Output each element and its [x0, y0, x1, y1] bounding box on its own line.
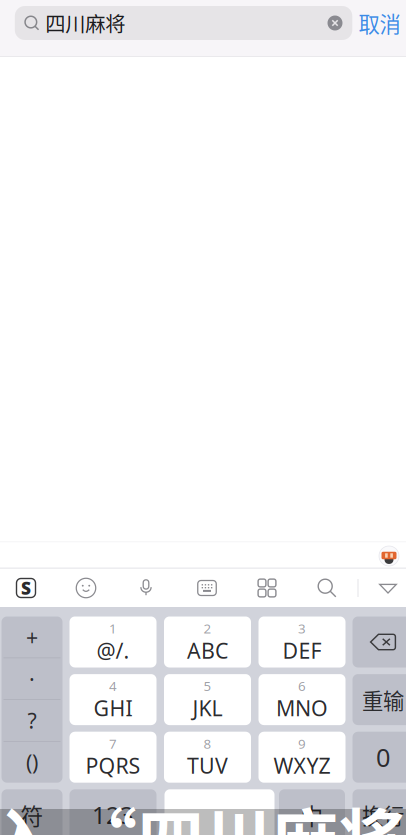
button[interactable]: · — [1, 658, 62, 699]
staticText: () — [26, 748, 38, 776]
staticText: TUV — [187, 751, 228, 780]
button[interactable]: ? — [1, 700, 62, 741]
staticText: 9 — [298, 735, 306, 752]
button[interactable]: 9 — [258, 732, 345, 783]
button[interactable]: 7 — [69, 732, 156, 783]
button[interactable]: 0 — [352, 732, 406, 783]
staticText: WXYZ — [273, 751, 330, 780]
button[interactable]: 8 — [164, 732, 251, 783]
button[interactable]: 3 — [258, 616, 345, 667]
staticText: ABC — [187, 636, 228, 664]
staticText: 5 — [203, 677, 211, 695]
button[interactable]: Sogou input — [4, 568, 48, 607]
button[interactable]: 符 — [1, 789, 62, 835]
staticText: 1 — [109, 619, 117, 637]
staticText: S — [21, 576, 31, 599]
button[interactable]: 123 — [69, 789, 156, 835]
staticText: 2 — [203, 619, 211, 637]
button[interactable]: () — [1, 742, 62, 783]
staticText: JKL — [192, 694, 222, 722]
button[interactable]: 6 — [258, 674, 345, 725]
button[interactable]: 取消 — [356, 6, 402, 40]
staticText: 6 — [298, 677, 306, 695]
button[interactable]: 换行 — [352, 789, 406, 835]
staticText: 7 — [109, 735, 117, 752]
button[interactable]: 2 — [164, 616, 251, 667]
staticText: 输入 “四川麻将” — [0, 788, 406, 835]
staticText: 取消 — [358, 8, 400, 38]
staticText: DEF — [282, 636, 321, 664]
staticText: 重输 — [362, 684, 404, 715]
staticText: + — [26, 623, 38, 651]
button[interactable]: Space — [164, 789, 274, 835]
staticText: @/. — [96, 636, 129, 664]
button[interactable]: 4 — [69, 674, 156, 725]
button[interactable]: 四川麻将 — [15, 6, 352, 40]
button[interactable]: Emoji — [64, 568, 108, 607]
button[interactable]: 中 — [279, 789, 345, 835]
staticText: 4 — [109, 677, 117, 695]
staticText: · — [29, 665, 35, 693]
button[interactable]: Delete — [352, 616, 406, 667]
button[interactable]: Hide keyboard — [366, 568, 406, 607]
staticText: PQRS — [85, 751, 140, 780]
staticText: 换行 — [362, 799, 404, 830]
button[interactable]: Promotion — [378, 545, 399, 566]
staticText: GHI — [93, 694, 132, 722]
staticText: 123 — [92, 799, 134, 831]
button[interactable]: 5 — [164, 674, 251, 725]
staticText: 3 — [298, 619, 306, 637]
button[interactable]: Search — [305, 568, 349, 607]
staticText: MNO — [276, 694, 328, 722]
staticText: 四川麻将 — [45, 8, 125, 38]
button[interactable]: Keyboard settings — [185, 568, 229, 607]
button[interactable]: 1 — [69, 616, 156, 667]
staticText: ? — [27, 706, 36, 735]
staticText: 0 — [376, 740, 390, 774]
button[interactable]: 重输 — [352, 674, 406, 725]
staticText: 中 — [300, 798, 323, 831]
button[interactable]: Voice input — [124, 568, 168, 607]
button[interactable]: More tools — [245, 568, 289, 607]
staticText: 符 — [20, 798, 43, 831]
button[interactable]: + — [1, 616, 62, 657]
staticText: 8 — [203, 735, 211, 752]
button[interactable]: Clear text — [320, 8, 350, 38]
